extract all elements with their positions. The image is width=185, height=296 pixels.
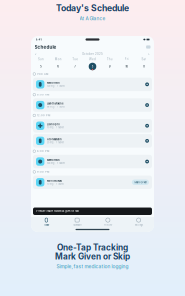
staticText: Mon xyxy=(55,58,62,61)
staticText: History xyxy=(104,223,112,226)
button[interactable]: Sat xyxy=(135,58,152,70)
staticText: 11 xyxy=(143,65,145,68)
staticText: Pressure inhaler marked as given for now xyxy=(36,210,79,213)
staticText: Sun xyxy=(38,58,44,61)
staticText: 6:00 PM xyxy=(37,150,49,153)
staticText: Wed xyxy=(89,58,96,61)
staticText: 10 mg · 1 tablet xyxy=(47,183,64,185)
staticText: 500 mg · 1 tablet xyxy=(47,162,65,165)
staticText: Schedule xyxy=(34,44,56,50)
button[interactable]: Previous week xyxy=(33,51,38,56)
staticText: 9:41 xyxy=(35,38,41,41)
staticText: 500 mg · 1 tablet xyxy=(47,85,65,87)
staticText: Montelukast xyxy=(47,179,62,182)
staticText: At A Glance xyxy=(79,16,105,21)
button[interactable]: Fri xyxy=(118,58,135,70)
button[interactable]: Metformin xyxy=(33,155,152,168)
staticText: 10 mg · 1 tablet xyxy=(47,126,64,129)
staticText: 88 mcg · 1 tablet xyxy=(47,105,65,108)
staticText: Metformin xyxy=(47,81,60,84)
staticText: Levothyroxine xyxy=(47,102,63,105)
button[interactable]: Levothyroxine xyxy=(33,98,152,112)
staticText: 12:00 PM xyxy=(37,114,50,117)
staticText: Metformin xyxy=(47,158,60,162)
button[interactable]: Wed xyxy=(84,58,101,70)
staticText: Today's Schedule xyxy=(56,3,129,13)
staticText: 7 xyxy=(74,65,76,68)
staticText: 8 xyxy=(91,65,93,68)
staticText: Schedule xyxy=(73,223,81,226)
staticText: › xyxy=(148,52,150,56)
button[interactable]: Settings xyxy=(123,218,154,226)
staticText: 6 xyxy=(57,65,59,68)
staticText: ‹ xyxy=(35,52,37,56)
staticText: Mark Given xyxy=(134,181,146,184)
staticText: Lisinopril xyxy=(47,123,60,126)
button[interactable]: Today xyxy=(31,218,62,226)
button[interactable]: Lisinopril xyxy=(33,119,152,132)
button[interactable]: Add medication xyxy=(146,45,150,49)
button[interactable]: Metformin xyxy=(33,78,152,91)
staticText: Thu xyxy=(107,58,113,61)
staticText: 20 mg · 1 tablet xyxy=(47,141,64,144)
staticText: Fri xyxy=(125,58,129,61)
staticText: Settings xyxy=(135,223,143,226)
button[interactable]: Montelukast xyxy=(33,175,152,189)
staticText: 9 xyxy=(109,65,111,68)
staticText: One-Tap Tracking xyxy=(57,242,128,252)
button[interactable]: Tue xyxy=(67,58,84,70)
staticText: Mark Given or Skip xyxy=(55,251,130,261)
button[interactable]: Atorvastatin xyxy=(33,134,152,148)
staticText: 9:00 PM xyxy=(37,170,49,173)
button[interactable]: Sun xyxy=(32,58,50,70)
staticText: Simple, fast medication logging xyxy=(56,264,128,269)
staticText: 8:00 AM xyxy=(37,93,49,96)
button[interactable]: Thu xyxy=(101,58,118,70)
staticText: 10 xyxy=(125,65,128,68)
staticText: 7:00 AM xyxy=(37,72,48,76)
button[interactable]: Schedule xyxy=(62,218,93,226)
staticText: Sat xyxy=(141,58,146,61)
staticText: Tue xyxy=(72,58,78,61)
staticText: Today xyxy=(44,223,49,226)
button[interactable]: History xyxy=(92,218,123,226)
button[interactable]: Mon xyxy=(50,58,67,70)
button[interactable]: Next week xyxy=(146,51,151,56)
staticText: Atorvastatin xyxy=(47,138,62,141)
staticText: October 2025 xyxy=(82,52,103,56)
staticText: 5 xyxy=(40,65,42,68)
